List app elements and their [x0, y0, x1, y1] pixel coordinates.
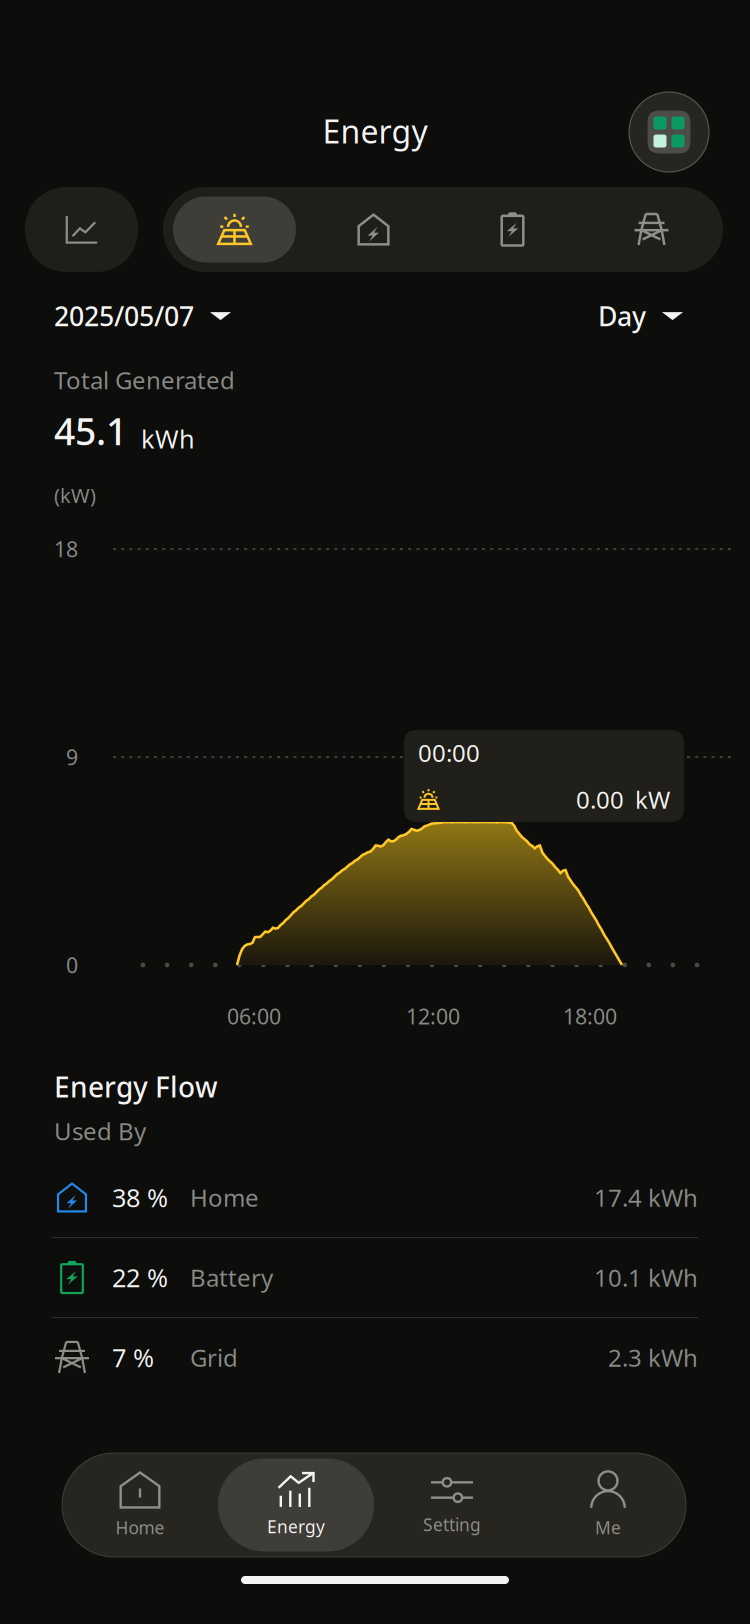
staticText: Energy — [322, 110, 427, 152]
button[interactable]: 2025/05/07 — [54, 296, 231, 336]
button[interactable]: Grid — [590, 196, 713, 262]
button[interactable]: Overview — [25, 187, 138, 272]
button[interactable]: Solar — [173, 196, 296, 262]
staticText: 00:00 — [418, 737, 480, 768]
staticText: Energy — [267, 1515, 325, 1538]
button[interactable]: Day — [598, 296, 683, 336]
button[interactable]: Battery — [451, 196, 574, 262]
staticText: Used By — [54, 1115, 146, 1147]
staticText: 2.3 kWh — [608, 1342, 698, 1373]
staticText: 0 — [66, 951, 78, 979]
button[interactable]: 7 % — [52, 1318, 698, 1397]
staticText: Setting — [423, 1513, 481, 1536]
staticText: 18:00 — [563, 1002, 617, 1030]
staticText: (kW) — [54, 482, 96, 509]
button[interactable]: Me — [530, 1458, 686, 1551]
staticText: Day — [598, 298, 646, 334]
staticText: Energy Flow — [54, 1068, 218, 1105]
staticText: Grid — [190, 1342, 238, 1373]
staticText: 18 — [54, 535, 78, 563]
staticText: 12:00 — [406, 1002, 460, 1030]
button[interactable]: 38 % — [52, 1158, 698, 1237]
button[interactable]: Home — [312, 196, 435, 262]
staticText: 45.1 — [54, 406, 127, 456]
staticText: 7 % — [112, 1341, 154, 1374]
staticText: Battery — [190, 1262, 273, 1293]
button[interactable]: Setting — [374, 1458, 530, 1551]
staticText: kWh — [141, 422, 195, 455]
staticText: 9 — [66, 743, 78, 771]
button[interactable]: Home — [62, 1458, 218, 1551]
staticText: 10.1 kWh — [594, 1262, 698, 1293]
staticText: Home — [190, 1182, 259, 1213]
staticText: 2025/05/07 — [54, 298, 194, 334]
staticText: 22 % — [112, 1261, 168, 1294]
button[interactable]: Devices — [629, 92, 709, 172]
staticText: 06:00 — [227, 1002, 281, 1030]
button[interactable]: 22 % — [52, 1238, 698, 1317]
button[interactable]: Energy — [218, 1458, 374, 1551]
staticText: Me — [595, 1516, 621, 1539]
staticText: Home — [115, 1516, 164, 1539]
staticText: 38 % — [112, 1181, 168, 1214]
staticText: 17.4 kWh — [594, 1182, 698, 1213]
staticText: Total Generated — [54, 364, 235, 396]
staticText: 0.00 — [576, 783, 624, 815]
staticText: kW — [635, 783, 670, 815]
